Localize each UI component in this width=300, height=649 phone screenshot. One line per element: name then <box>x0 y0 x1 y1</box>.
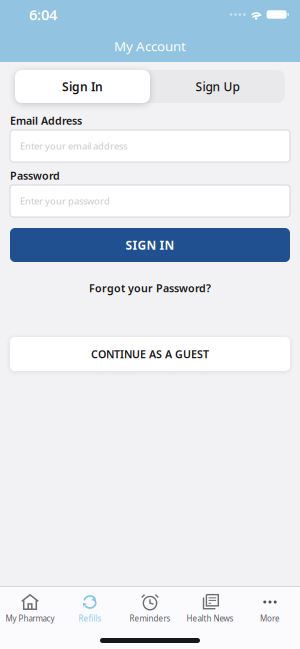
button[interactable]: Sign Up <box>150 70 285 103</box>
staticText: Health News <box>186 613 233 624</box>
staticText: Password <box>10 168 60 183</box>
staticText: Enter your email address <box>20 140 127 152</box>
button[interactable]: Sign In <box>15 70 150 103</box>
button[interactable]: Forgot your Password? <box>89 282 211 294</box>
button[interactable]: Reminders <box>120 594 180 624</box>
staticText: Sign In <box>62 78 103 94</box>
staticText: Sign Up <box>195 78 239 94</box>
staticText: Enter your password <box>20 195 110 207</box>
staticText: My Account <box>114 37 186 55</box>
staticText: SIGN IN <box>125 237 174 253</box>
staticText: More <box>260 613 280 624</box>
staticText: Refills <box>78 613 101 624</box>
staticText: Forgot your Password? <box>89 281 211 295</box>
staticText: Email Address <box>10 113 82 128</box>
button[interactable]: More <box>240 594 300 624</box>
button[interactable]: Refills <box>60 594 120 624</box>
button[interactable]: Health News <box>180 594 240 624</box>
staticText: CONTINUE AS A GUEST <box>91 347 209 361</box>
staticText: My Pharmacy <box>5 613 54 624</box>
button[interactable]: SIGN IN <box>10 228 290 262</box>
button[interactable]: My Pharmacy <box>0 594 60 624</box>
staticText: 6:04 <box>29 5 57 24</box>
staticText: Reminders <box>129 613 170 624</box>
button[interactable]: CONTINUE AS A GUEST <box>10 337 290 371</box>
